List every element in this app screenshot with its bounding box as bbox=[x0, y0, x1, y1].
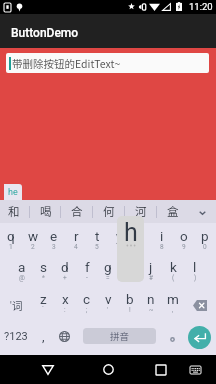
button[interactable]: 盒 bbox=[157, 200, 189, 223]
staticText: p bbox=[201, 228, 209, 244]
staticText: 和 bbox=[8, 203, 20, 220]
staticText: 河 bbox=[135, 203, 147, 220]
button[interactable]: 合 bbox=[61, 200, 93, 223]
button[interactable]: t bbox=[86, 227, 108, 257]
button[interactable]: Home bbox=[94, 355, 122, 384]
button[interactable]: b bbox=[119, 290, 141, 320]
staticText: 4 bbox=[74, 243, 78, 251]
staticText: 3 bbox=[52, 243, 56, 251]
button[interactable]: v bbox=[97, 290, 119, 320]
button[interactable]: w bbox=[22, 227, 44, 257]
staticText: * bbox=[42, 274, 45, 282]
button[interactable]: c bbox=[76, 290, 98, 320]
button[interactable]: y bbox=[108, 227, 130, 257]
staticText: 何 bbox=[103, 203, 115, 220]
button[interactable]: j bbox=[140, 258, 162, 288]
staticText: ButtonDemo bbox=[11, 26, 79, 40]
staticText: i bbox=[160, 228, 164, 244]
staticText: 词 bbox=[12, 298, 23, 313]
button[interactable]: ?123 bbox=[0, 321, 32, 351]
button[interactable]: Change keyboard language bbox=[53, 321, 75, 351]
button[interactable]: , bbox=[32, 321, 54, 351]
button[interactable]: Recent apps bbox=[147, 355, 175, 384]
staticText: ~ bbox=[149, 306, 154, 314]
staticText: , bbox=[172, 306, 174, 314]
staticText: g bbox=[104, 259, 112, 275]
staticText: s bbox=[40, 259, 47, 275]
staticText: z bbox=[40, 291, 47, 307]
staticText: v bbox=[105, 291, 112, 307]
button[interactable]: x bbox=[54, 290, 76, 320]
button[interactable]: u bbox=[130, 227, 152, 257]
button[interactable]: q bbox=[0, 227, 22, 257]
staticText: h bbox=[124, 218, 138, 247]
button[interactable]: s bbox=[32, 258, 54, 288]
staticText: 9 bbox=[182, 243, 186, 251]
staticText: ( bbox=[172, 274, 175, 282]
button[interactable]: l bbox=[184, 258, 206, 288]
staticText: c bbox=[83, 291, 91, 307]
button[interactable]: n bbox=[140, 290, 162, 320]
staticText: d bbox=[61, 259, 69, 275]
button[interactable]: 拼音 bbox=[83, 328, 156, 344]
staticText: 0 bbox=[203, 243, 207, 251]
staticText: 盒 bbox=[167, 203, 179, 220]
staticText: - bbox=[86, 274, 88, 282]
button[interactable]: 何 bbox=[93, 200, 125, 223]
staticText: 5 bbox=[95, 243, 99, 251]
staticText: ! bbox=[129, 306, 131, 314]
staticText: e bbox=[50, 228, 58, 244]
button[interactable]: Backspace bbox=[184, 290, 216, 320]
staticText: k bbox=[170, 259, 177, 275]
staticText: j bbox=[149, 259, 153, 275]
staticText: ?123 bbox=[4, 330, 28, 343]
staticText: ` bbox=[42, 306, 45, 314]
button[interactable]: p bbox=[194, 227, 216, 257]
staticText: u bbox=[137, 228, 145, 244]
staticText: : bbox=[64, 306, 66, 314]
staticText: o bbox=[180, 228, 188, 244]
button[interactable]: f bbox=[76, 258, 98, 288]
button[interactable]: 河 bbox=[125, 200, 157, 223]
staticText: y bbox=[116, 228, 123, 244]
button[interactable]: 和 bbox=[0, 200, 30, 223]
button[interactable]: 喝 bbox=[30, 200, 62, 223]
staticText: m bbox=[167, 291, 179, 307]
button[interactable]: ' bbox=[0, 290, 32, 320]
staticText: 8 bbox=[160, 243, 164, 251]
button[interactable]: Switch keyboard bbox=[181, 355, 209, 384]
staticText: @ bbox=[19, 274, 25, 282]
staticText: n bbox=[147, 291, 155, 307]
button[interactable]: m bbox=[162, 290, 184, 320]
staticText: 喝 bbox=[40, 203, 52, 220]
button[interactable]: 带删除按钮的EditText~ bbox=[6, 53, 209, 73]
button[interactable]: i bbox=[151, 227, 173, 257]
button[interactable]: o bbox=[173, 227, 195, 257]
button[interactable]: h bbox=[119, 258, 141, 288]
button[interactable]: g bbox=[97, 258, 119, 288]
staticText: t bbox=[95, 228, 100, 244]
button[interactable]: Keyboard settings bbox=[163, 324, 181, 354]
staticText: ; bbox=[86, 306, 88, 314]
button[interactable]: Enter bbox=[188, 326, 211, 349]
staticText: r bbox=[74, 228, 79, 244]
button[interactable]: More candidates bbox=[189, 200, 215, 223]
button[interactable]: e bbox=[43, 227, 65, 257]
button[interactable]: k bbox=[162, 258, 184, 288]
staticText: , bbox=[42, 329, 45, 344]
button[interactable]: Back bbox=[34, 355, 62, 384]
staticText: ) bbox=[194, 274, 197, 282]
staticText: 带删除按钮的EditText~ bbox=[12, 56, 121, 71]
staticText: a bbox=[18, 259, 26, 275]
staticText: he bbox=[8, 187, 18, 198]
button[interactable]: d bbox=[54, 258, 76, 288]
button[interactable]: a bbox=[11, 258, 33, 288]
staticText: q bbox=[7, 228, 15, 244]
staticText: f bbox=[85, 259, 90, 275]
button[interactable]: r bbox=[65, 227, 87, 257]
staticText: 11:20 bbox=[189, 1, 213, 12]
button[interactable]: z bbox=[32, 290, 54, 320]
